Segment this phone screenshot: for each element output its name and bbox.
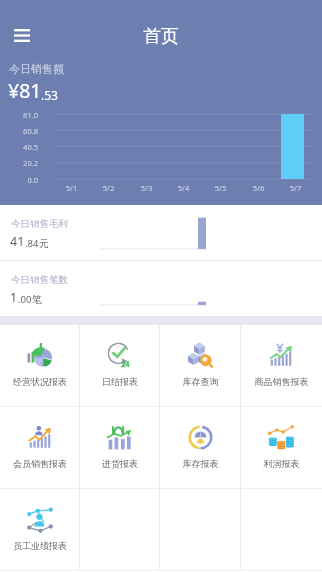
staticText: 库存查询 <box>160 376 241 387</box>
staticText: 5/1 <box>53 183 90 193</box>
button[interactable]: 今日销售笔数 <box>0 261 322 316</box>
staticText: .53 <box>41 87 58 103</box>
staticText: 利润报表 <box>241 458 322 469</box>
staticText: 81.0 <box>9 110 38 120</box>
staticText: 60.8 <box>9 126 38 136</box>
staticText: 41 <box>10 233 25 250</box>
staticText: 40.5 <box>9 142 38 152</box>
staticText: 0.0 <box>9 175 38 185</box>
button[interactable]: 今日销售毛利 <box>0 205 322 260</box>
button[interactable]: 商品销售报表 <box>241 325 322 406</box>
staticText: ¥81 <box>8 77 42 104</box>
staticText: 5/5 <box>202 183 239 193</box>
staticText: 笔 <box>32 293 42 306</box>
staticText: 进货报表 <box>80 458 160 469</box>
staticText: 5/4 <box>165 183 202 193</box>
staticText: 会员销售报表 <box>0 458 80 469</box>
staticText: 1 <box>10 289 18 306</box>
staticText: 今日销售笔数 <box>11 274 68 286</box>
button[interactable]: 会员销售报表 <box>0 407 80 488</box>
staticText: 今日销售额 <box>9 62 64 76</box>
button[interactable]: 进货报表 <box>80 407 160 488</box>
staticText: .00 <box>18 293 32 306</box>
button[interactable]: 员工业绩报表 <box>0 489 80 570</box>
staticText: 元 <box>39 237 49 250</box>
staticText: 5/6 <box>240 183 277 193</box>
staticText: 5/2 <box>90 183 127 193</box>
button[interactable]: 日结报表 <box>80 325 160 406</box>
staticText: 5/3 <box>128 183 165 193</box>
staticText: 员工业绩报表 <box>0 540 80 551</box>
button[interactable]: 经营状况报表 <box>0 325 80 406</box>
staticText: 首页 <box>0 25 322 48</box>
button[interactable]: 利润报表 <box>241 407 322 488</box>
button[interactable]: 库存查询 <box>160 325 241 406</box>
button[interactable]: 库存报表 <box>160 407 241 488</box>
button[interactable]: Menu <box>6 19 38 51</box>
staticText: .84 <box>25 237 39 250</box>
staticText: 5/7 <box>277 183 314 193</box>
staticText: 日结报表 <box>80 376 160 387</box>
staticText: 商品销售报表 <box>241 376 322 387</box>
staticText: 库存报表 <box>160 458 241 469</box>
staticText: 经营状况报表 <box>0 376 80 387</box>
staticText: 20.2 <box>9 158 38 168</box>
staticText: 今日销售毛利 <box>11 218 68 230</box>
